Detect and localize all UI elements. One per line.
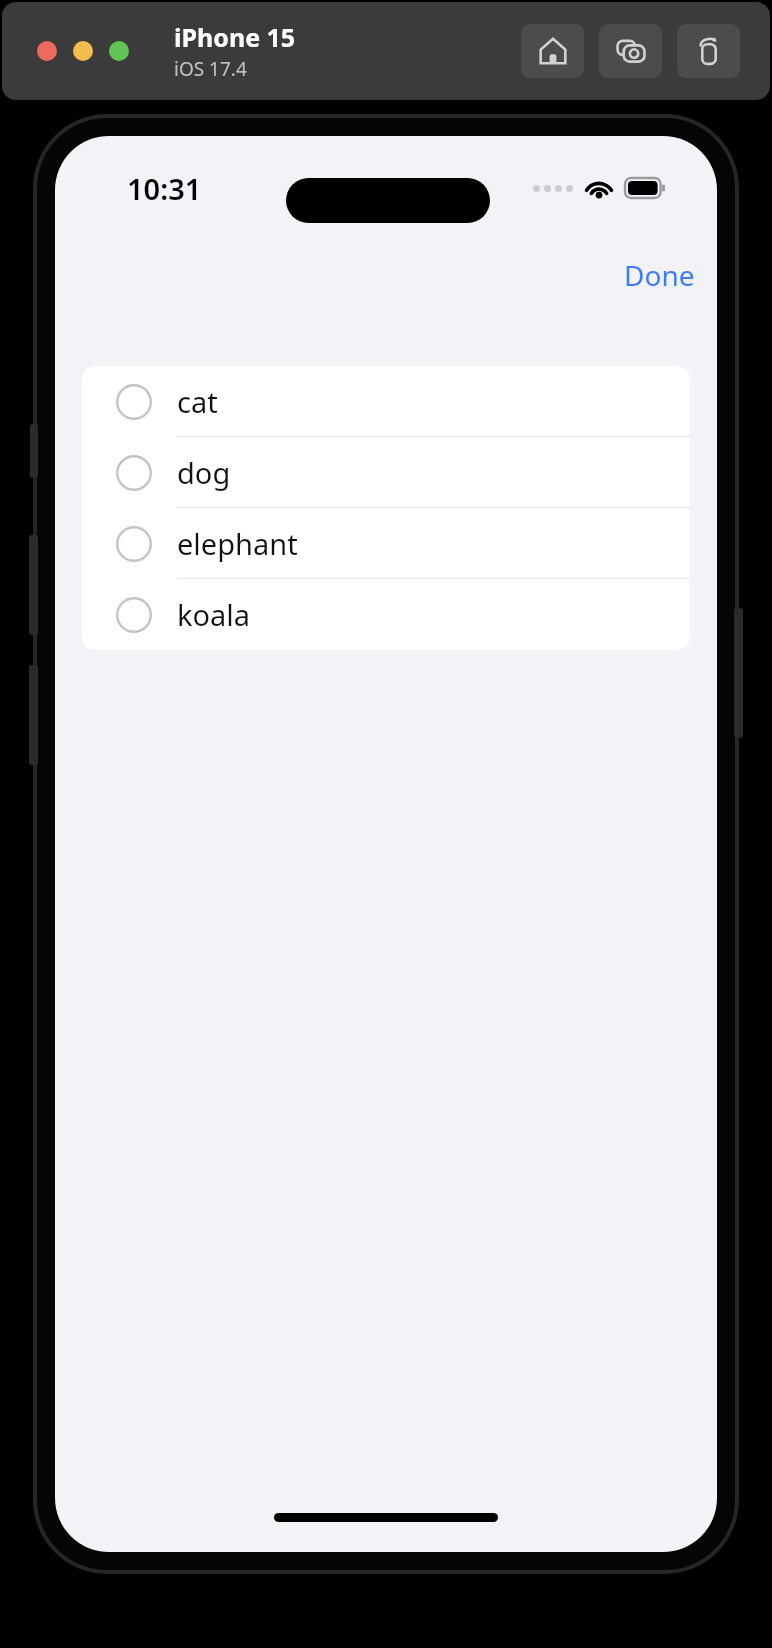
button[interactable]: elephant [82,508,690,579]
staticText: Done [624,256,695,294]
button[interactable]: Home [521,24,584,78]
button[interactable] [109,41,129,61]
staticText: cat [177,382,218,421]
button[interactable] [37,41,57,61]
button[interactable]: Done [610,248,709,302]
staticText: iPhone 15 [174,20,296,54]
button[interactable] [73,41,93,61]
staticText: elephant [177,524,298,563]
staticText: iOS 17.4 [174,56,247,82]
button[interactable]: Rotate [677,24,740,78]
staticText: 10:31 [127,169,202,208]
button[interactable]: koala [82,579,690,650]
button[interactable]: Screenshot [599,24,662,78]
staticText: dog [177,453,231,492]
button[interactable]: dog [82,437,690,508]
staticText: koala [177,595,251,634]
button[interactable]: cat [82,366,690,437]
